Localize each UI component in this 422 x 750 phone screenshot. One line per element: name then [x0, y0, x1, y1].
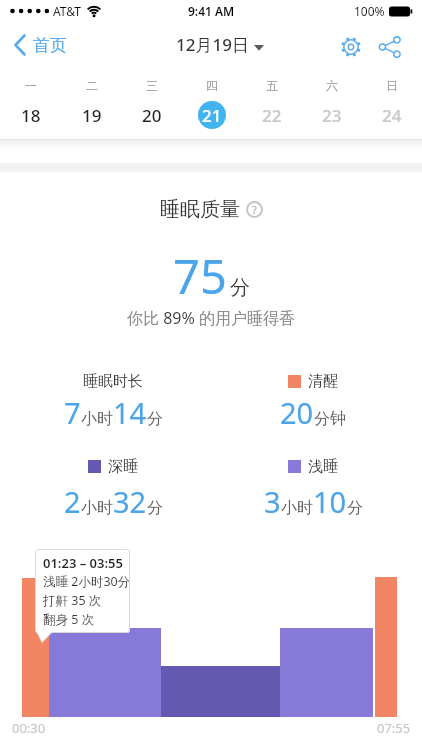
staticText: 分钟 — [314, 409, 346, 429]
button[interactable]: 清醒 — [208, 368, 418, 394]
button[interactable]: 睡眠时长 — [8, 368, 218, 394]
staticText: 打鼾 35 次 — [43, 592, 102, 609]
staticText: 14 — [113, 393, 147, 432]
staticText: 100% — [354, 3, 385, 19]
staticText: 9:41 AM — [188, 3, 235, 19]
button[interactable]: 浅睡 — [208, 453, 418, 479]
button[interactable]: 24 — [378, 101, 406, 129]
staticText: 22 — [262, 104, 282, 127]
staticText: 分 — [347, 498, 363, 518]
staticText: 分 — [147, 409, 163, 429]
staticText: 六 — [326, 78, 338, 93]
button[interactable] — [378, 36, 402, 58]
staticText: 小时 — [81, 498, 113, 518]
staticText: 睡眠质量 — [160, 197, 240, 222]
staticText: 2 — [64, 482, 81, 521]
button[interactable]: 12月19日 — [176, 33, 264, 56]
staticText: 分 — [147, 498, 163, 518]
staticText: 二 — [86, 78, 98, 93]
staticText: 12月19日 — [176, 33, 249, 56]
staticText: AT&T — [53, 3, 81, 19]
staticText: 20 — [280, 393, 314, 432]
staticText: 75 — [173, 244, 227, 308]
button[interactable]: 19 — [78, 101, 106, 129]
staticText: 32 — [113, 482, 147, 521]
staticText: 清醒 — [308, 372, 338, 391]
staticText: 分 — [230, 275, 250, 300]
staticText: 四 — [206, 78, 218, 93]
button[interactable] — [49, 628, 161, 717]
staticText: 小时 — [81, 409, 113, 429]
button[interactable] — [339, 35, 363, 59]
button[interactable]: 首页 — [14, 34, 67, 56]
staticText: 10 — [313, 482, 347, 521]
staticText: 00:30 — [12, 719, 46, 737]
staticText: 浅睡 2小时30分 — [43, 573, 130, 590]
staticText: 三 — [146, 78, 158, 93]
button[interactable]: 深睡 — [8, 453, 218, 479]
staticText: 18 — [21, 104, 41, 127]
button[interactable] — [22, 578, 49, 717]
staticText: 一 — [25, 78, 37, 93]
staticText: 五 — [266, 78, 278, 93]
staticText: 21 — [202, 104, 222, 127]
staticText: ? — [252, 202, 257, 217]
staticText: 19 — [82, 104, 102, 127]
button[interactable]: 22 — [258, 101, 286, 129]
staticText: 20 — [142, 104, 162, 127]
staticText: 睡眠时长 — [83, 372, 143, 391]
staticText: 你比 89% 的用户睡得香 — [127, 307, 295, 329]
staticText: 小时 — [281, 498, 313, 518]
staticText: 深睡 — [108, 457, 138, 476]
button[interactable]: 21 — [198, 101, 226, 129]
staticText: 首页 — [33, 35, 67, 56]
staticText: 7 — [64, 393, 81, 432]
staticText: 3 — [264, 482, 281, 521]
staticText: 浅睡 — [308, 457, 338, 476]
staticText: 23 — [322, 104, 342, 127]
button[interactable]: 23 — [318, 101, 346, 129]
staticText: 日 — [386, 78, 398, 93]
staticText: 01:23 – 03:55 — [43, 554, 123, 572]
staticText: 翻身 5 次 — [43, 611, 95, 628]
button[interactable]: ? — [246, 201, 263, 218]
button[interactable]: 18 — [17, 101, 45, 129]
staticText: 24 — [382, 104, 402, 127]
staticText: 07:55 — [377, 719, 411, 737]
button[interactable]: 20 — [138, 101, 166, 129]
